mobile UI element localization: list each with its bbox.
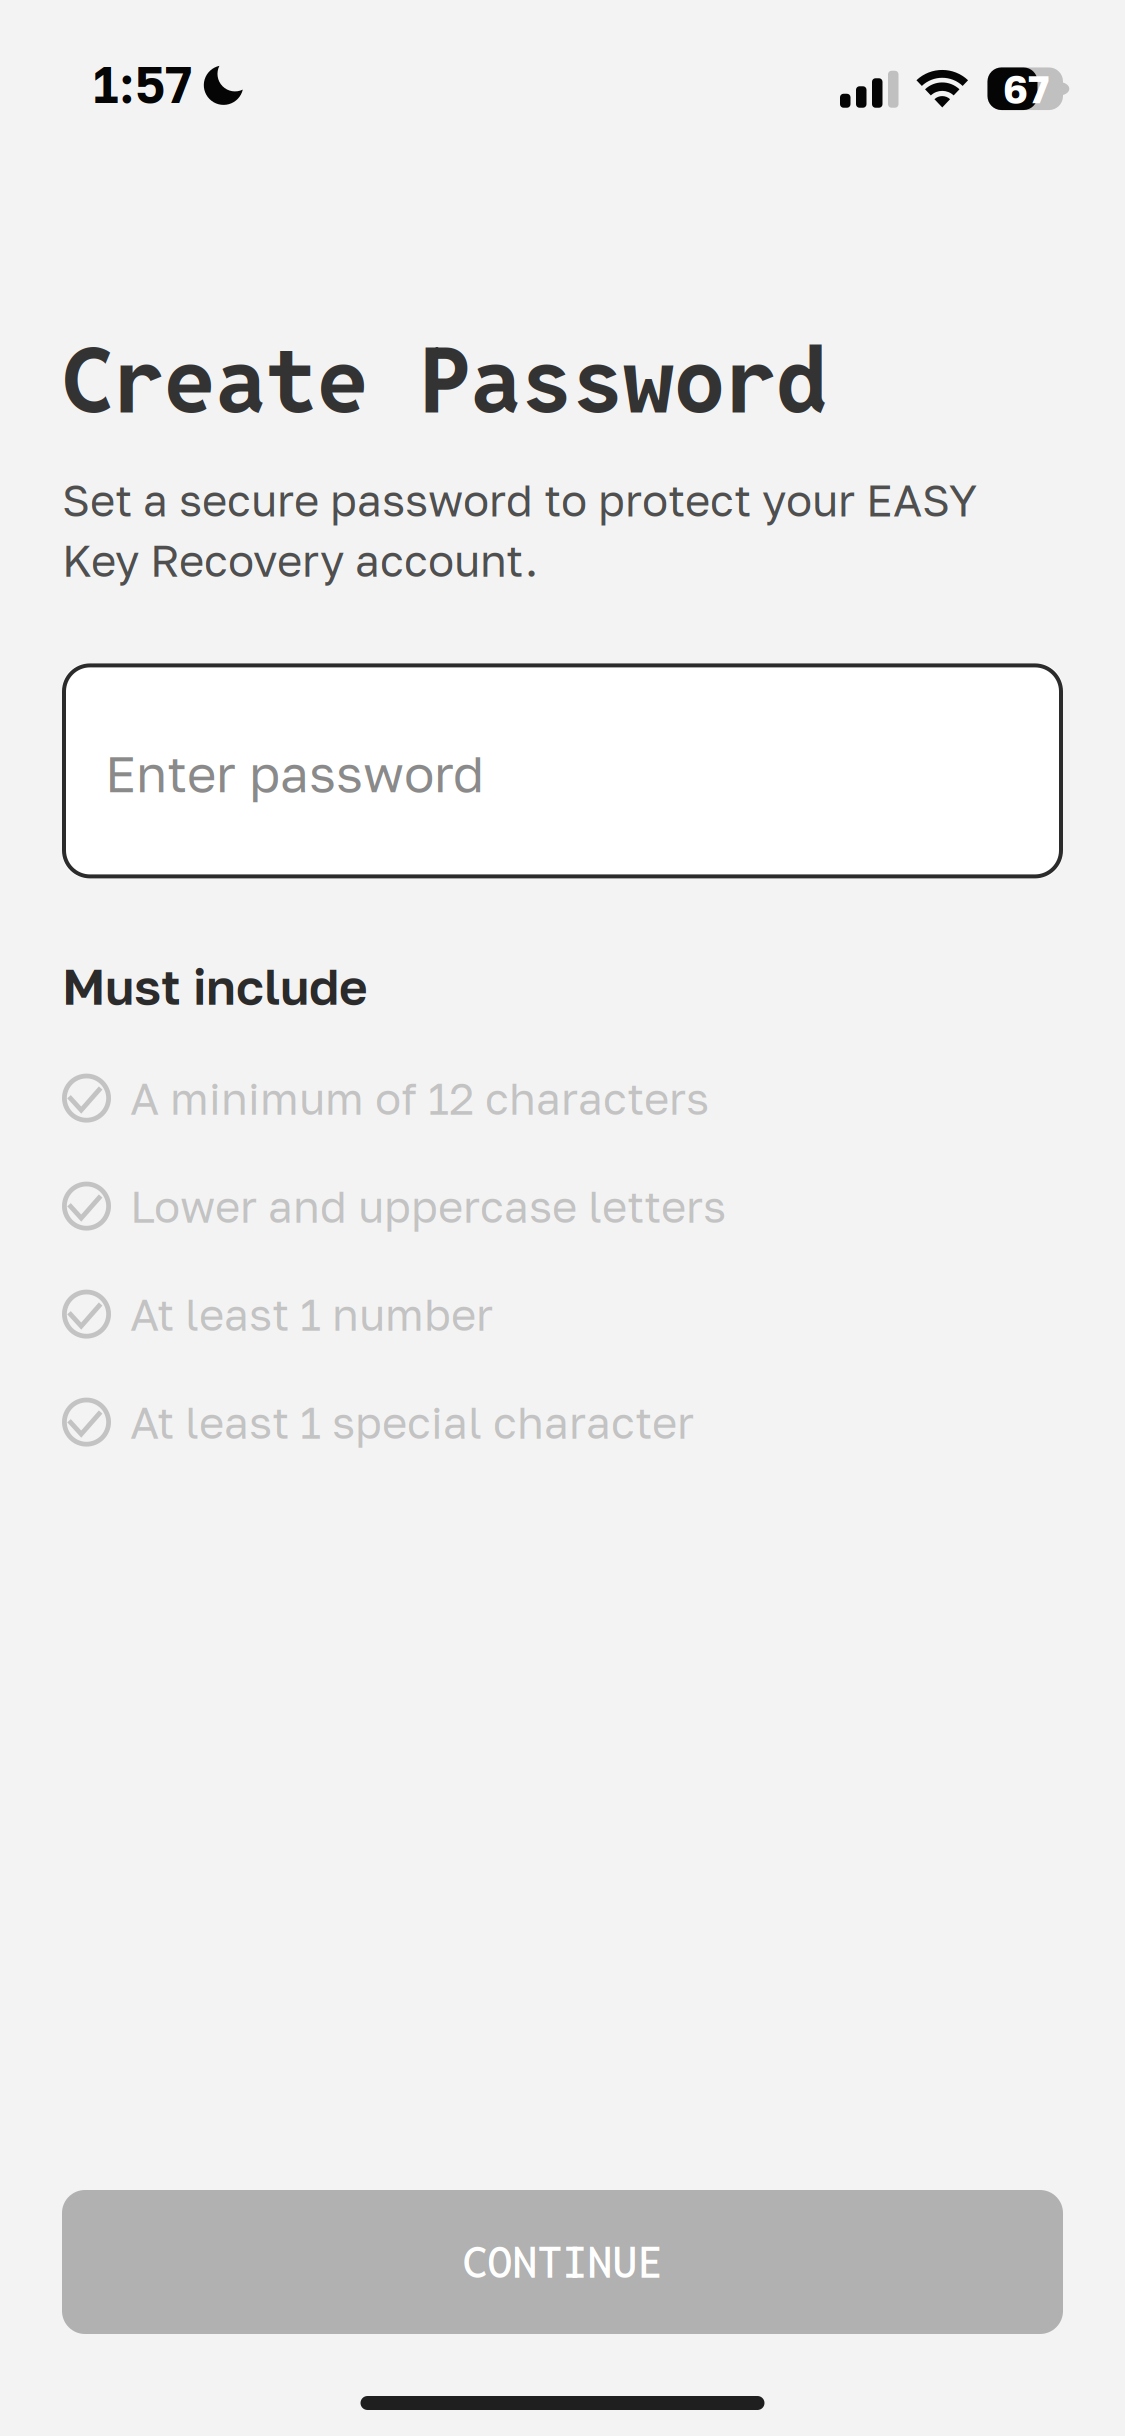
staticText: Create Password <box>62 321 827 439</box>
staticText: Lower and uppercase letters <box>130 1180 726 1232</box>
staticText: 67 <box>1003 65 1049 112</box>
staticText: At least 1 special character <box>130 1396 694 1448</box>
button[interactable]: CONTINUE <box>62 2190 1063 2334</box>
staticText: A minimum of 12 characters <box>130 1072 709 1124</box>
staticText: 1:57 <box>93 53 192 114</box>
staticText: CONTINUE <box>462 2233 662 2290</box>
staticText: Set a secure password to protect your EA… <box>62 474 977 586</box>
staticText: Enter password <box>105 742 484 803</box>
staticText: Must include <box>62 956 368 1016</box>
staticText: At least 1 number <box>130 1288 493 1340</box>
